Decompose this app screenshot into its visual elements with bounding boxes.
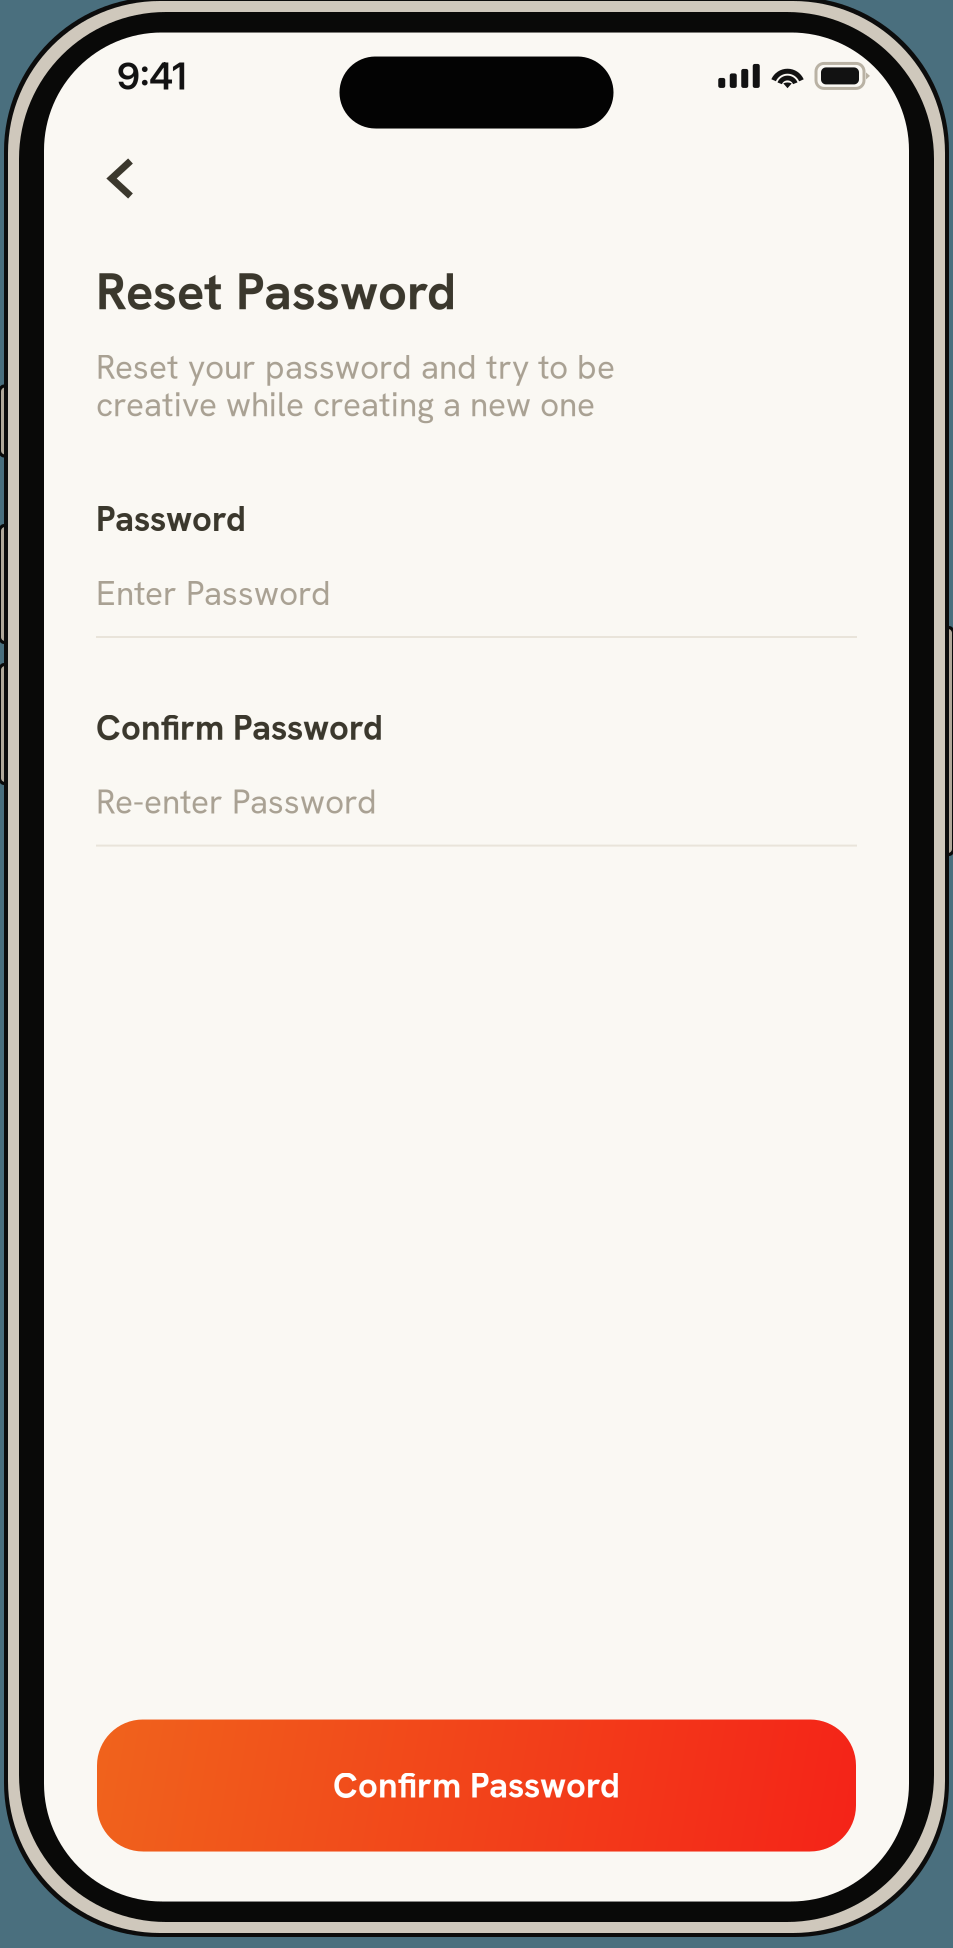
- staticText: 9:41: [117, 53, 187, 98]
- staticText: Confirm Password: [96, 705, 383, 750]
- button[interactable]: Enter Password: [96, 572, 857, 638]
- staticText: Confirm Password: [333, 1763, 620, 1808]
- staticText: Enter Password: [96, 572, 331, 615]
- staticText: Password: [96, 496, 246, 542]
- staticText: Reset your password and try to be creati…: [96, 345, 615, 426]
- button[interactable]: Re-enter Password: [96, 780, 857, 847]
- staticText: Reset Password: [96, 258, 456, 324]
- button[interactable]: Back: [44, 135, 164, 221]
- staticText: Re-enter Password: [96, 780, 377, 824]
- button[interactable]: Confirm Password: [97, 1719, 856, 1851]
